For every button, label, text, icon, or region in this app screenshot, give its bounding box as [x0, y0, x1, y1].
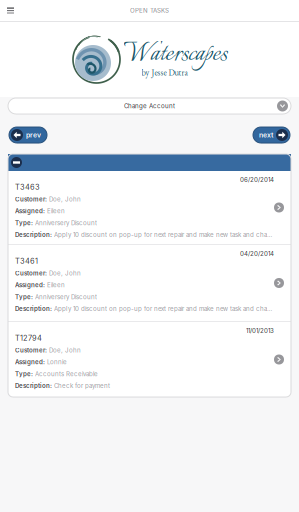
button[interactable]: Change Account: [8, 98, 291, 114]
staticText: Customer:: [15, 347, 47, 354]
staticText: Doe, John: [49, 270, 81, 277]
button[interactable]: T12794: [8, 322, 291, 397]
staticText: prev: [26, 131, 41, 139]
staticText: next: [259, 131, 273, 139]
staticText: Eileen: [47, 207, 65, 215]
staticText: Eileen: [47, 281, 65, 289]
staticText: Doe, John: [49, 347, 81, 354]
staticText: Type:: [15, 370, 33, 378]
staticText: Lonnie: [47, 358, 67, 366]
staticText: Check for payment: [54, 382, 110, 389]
staticText: Assigned:: [15, 281, 45, 289]
staticText: 06/20/2014: [240, 176, 274, 183]
staticText: 04/20/2014: [240, 250, 274, 257]
button[interactable]: prev: [9, 127, 47, 143]
button[interactable]: next: [253, 127, 290, 143]
staticText: Waterscapes: [123, 35, 227, 74]
button[interactable]: T3463: [8, 171, 291, 244]
staticText: T12794: [15, 333, 42, 342]
staticText: Description:: [15, 382, 52, 389]
staticText: Assigned:: [15, 358, 45, 366]
staticText: Customer:: [15, 270, 47, 277]
button[interactable]: Collapse section: [8, 154, 291, 171]
staticText: Type:: [15, 293, 33, 301]
staticText: Apply 10 discount on pop-up for next rep…: [54, 231, 275, 238]
button[interactable]: T3461: [8, 245, 291, 321]
staticText: T3463: [15, 182, 40, 191]
staticText: by Jesse Dutra: [141, 67, 187, 78]
staticText: Accounts Receivable: [35, 370, 98, 378]
staticText: Anniversery Discount: [35, 219, 97, 227]
staticText: Type:: [15, 219, 33, 227]
staticText: OPEN TASKS: [130, 7, 169, 14]
staticText: Description:: [15, 231, 52, 238]
staticText: Description:: [15, 305, 52, 312]
staticText: 11/01/2013: [246, 327, 274, 334]
staticText: Apply 10 discount on pop-up for next rep…: [54, 305, 275, 312]
staticText: Customer:: [15, 196, 47, 203]
button[interactable]: Menu: [0, 0, 21, 21]
staticText: Change Account: [124, 102, 175, 110]
staticText: Anniversery Discount: [35, 293, 97, 301]
staticText: Doe, John: [49, 196, 81, 203]
staticText: T3461: [15, 256, 38, 265]
staticText: Assigned:: [15, 207, 45, 215]
